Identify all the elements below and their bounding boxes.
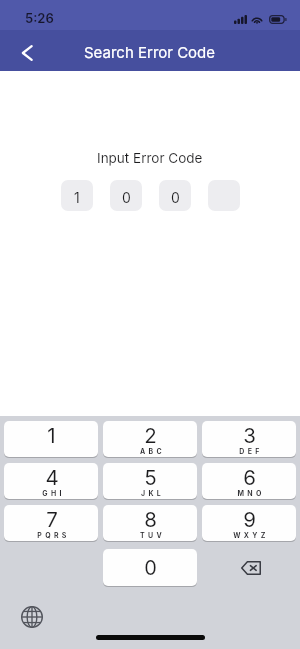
staticText: 9 <box>243 507 256 532</box>
button[interactable]: 6 <box>202 463 296 499</box>
button[interactable]: 5 <box>103 463 197 499</box>
staticText: WXYZ <box>233 531 269 539</box>
button[interactable]: 9 <box>202 505 296 541</box>
button[interactable]: 7 <box>4 505 98 541</box>
button[interactable]: 0 <box>103 549 197 586</box>
staticText: 0 <box>122 189 131 206</box>
staticText: PQRS <box>37 531 70 539</box>
button[interactable]: 2 <box>103 421 197 457</box>
button[interactable]: Backspace <box>202 549 296 586</box>
staticText: 0 <box>171 189 180 206</box>
button[interactable]: 3 <box>202 421 296 457</box>
staticText: 2 <box>144 423 157 448</box>
button[interactable]: 1 <box>4 421 98 457</box>
staticText: 3 <box>243 423 256 448</box>
staticText: 0 <box>144 556 157 580</box>
staticText: 8 <box>144 507 157 532</box>
staticText: Input Error Code <box>97 150 203 166</box>
staticText: 1 <box>47 423 56 448</box>
staticText: GHI <box>42 489 65 497</box>
button[interactable]: 1 <box>61 180 93 211</box>
button[interactable]: 0 <box>110 180 142 211</box>
staticText: 1 <box>74 189 80 206</box>
button[interactable]: 4 <box>4 463 98 499</box>
staticText: ABC <box>140 447 165 455</box>
staticText: 5:26 <box>25 10 54 26</box>
staticText: MNO <box>237 489 265 497</box>
staticText: 5 <box>144 465 157 490</box>
button[interactable]: 8 <box>103 505 197 541</box>
button[interactable] <box>208 180 240 211</box>
button[interactable]: 0 <box>159 180 191 211</box>
staticText: 6 <box>243 465 256 490</box>
staticText: JKL <box>141 489 164 497</box>
staticText: 4 <box>45 465 59 490</box>
button[interactable]: Back <box>5 34 49 71</box>
staticText: TUV <box>140 531 165 539</box>
staticText: DEF <box>239 447 263 455</box>
button[interactable]: Change keyboard language <box>18 603 46 631</box>
staticText: 7 <box>46 507 58 532</box>
staticText: Search Error Code <box>84 43 216 61</box>
